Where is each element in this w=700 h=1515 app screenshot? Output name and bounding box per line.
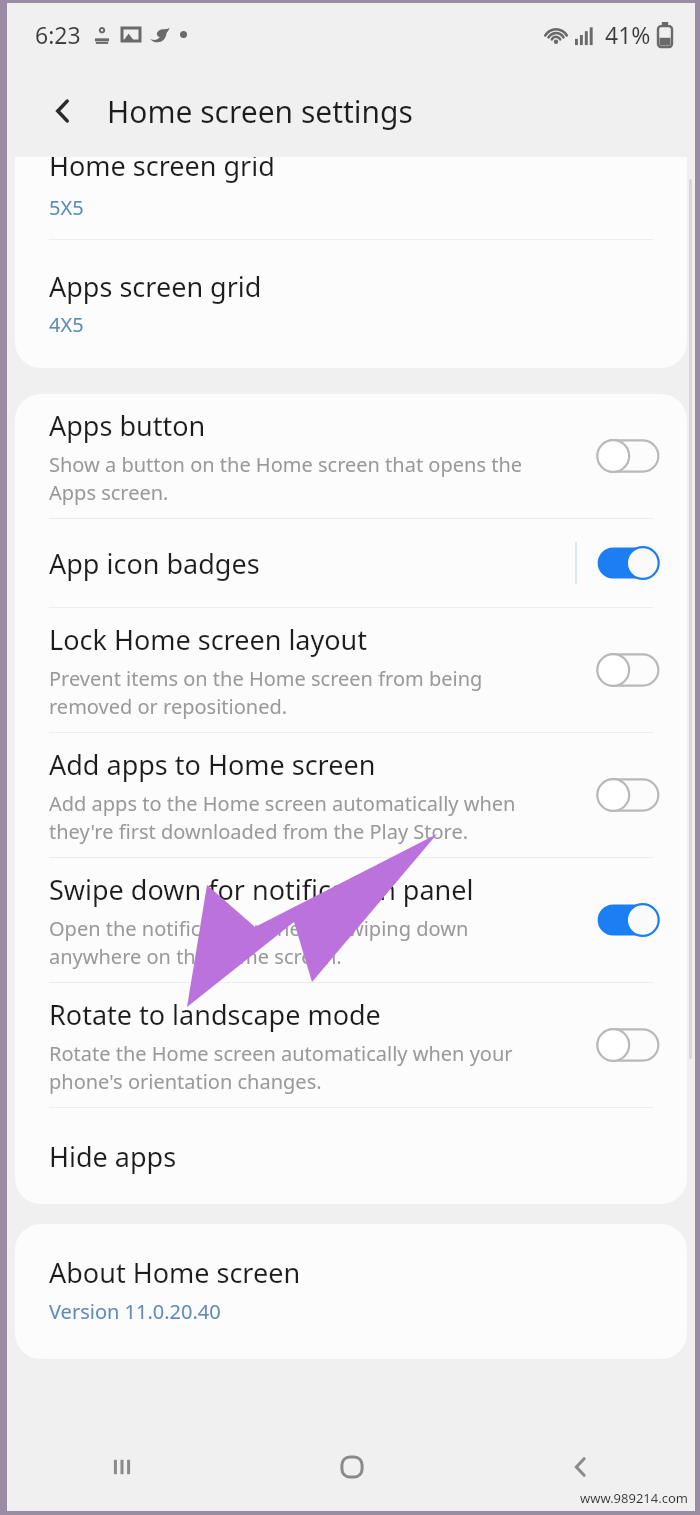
staticText: About Home screen bbox=[49, 1254, 301, 1291]
button[interactable]: Rotate to landscape mode bbox=[15, 983, 687, 1107]
staticText: 4X5 bbox=[49, 311, 84, 338]
staticText: Swipe down for notification panel bbox=[49, 871, 474, 908]
button[interactable]: Apps screen grid bbox=[15, 240, 687, 368]
button[interactable]: Recents bbox=[7, 1423, 237, 1511]
button[interactable]: Hide apps bbox=[15, 1108, 687, 1204]
staticText: 41% bbox=[605, 19, 651, 50]
button[interactable]: Apps button bbox=[15, 394, 687, 518]
staticText: Rotate the Home screen automatically whe… bbox=[49, 1040, 513, 1095]
button[interactable]: Off bbox=[595, 1025, 661, 1065]
staticText: Hide apps bbox=[49, 1138, 177, 1175]
button[interactable]: App icon badges bbox=[15, 519, 687, 607]
staticText: Rotate to landscape mode bbox=[49, 996, 381, 1033]
button[interactable]: Back bbox=[466, 1423, 695, 1511]
staticText: Add apps to the Home screen automaticall… bbox=[49, 790, 516, 845]
button[interactable]: Add apps to Home screen bbox=[15, 733, 687, 857]
staticText: Apps screen grid bbox=[49, 268, 262, 305]
staticText: Prevent items on the Home screen from be… bbox=[49, 665, 483, 720]
button[interactable]: Off bbox=[595, 436, 661, 476]
button[interactable]: About Home screen bbox=[15, 1224, 687, 1359]
staticText: Show a button on the Home screen that op… bbox=[49, 451, 523, 506]
staticText: 6:23 bbox=[35, 19, 81, 50]
button[interactable]: Off bbox=[595, 650, 661, 690]
staticText: Home screen settings bbox=[107, 91, 413, 132]
button[interactable]: Lock Home screen layout bbox=[15, 608, 687, 732]
button[interactable]: Home screen grid bbox=[15, 157, 687, 239]
staticText: Home screen grid bbox=[49, 157, 275, 184]
button[interactable]: Home bbox=[237, 1423, 466, 1511]
staticText: www.989214.com bbox=[580, 1489, 688, 1507]
button[interactable]: Off bbox=[595, 775, 661, 815]
staticText: App icon badges bbox=[49, 545, 260, 582]
button[interactable]: On bbox=[595, 543, 661, 583]
staticText: Lock Home screen layout bbox=[49, 621, 368, 658]
button[interactable]: Swipe down for notification panel bbox=[15, 858, 687, 982]
staticText: 5X5 bbox=[49, 194, 84, 221]
button[interactable]: On bbox=[595, 900, 661, 940]
staticText: Version 11.0.20.40 bbox=[49, 1298, 221, 1325]
staticText: Apps button bbox=[49, 407, 206, 444]
button[interactable]: Back bbox=[41, 89, 85, 133]
staticText: Add apps to Home screen bbox=[49, 746, 376, 783]
staticText: Open the notification panel by swiping d… bbox=[49, 915, 469, 970]
